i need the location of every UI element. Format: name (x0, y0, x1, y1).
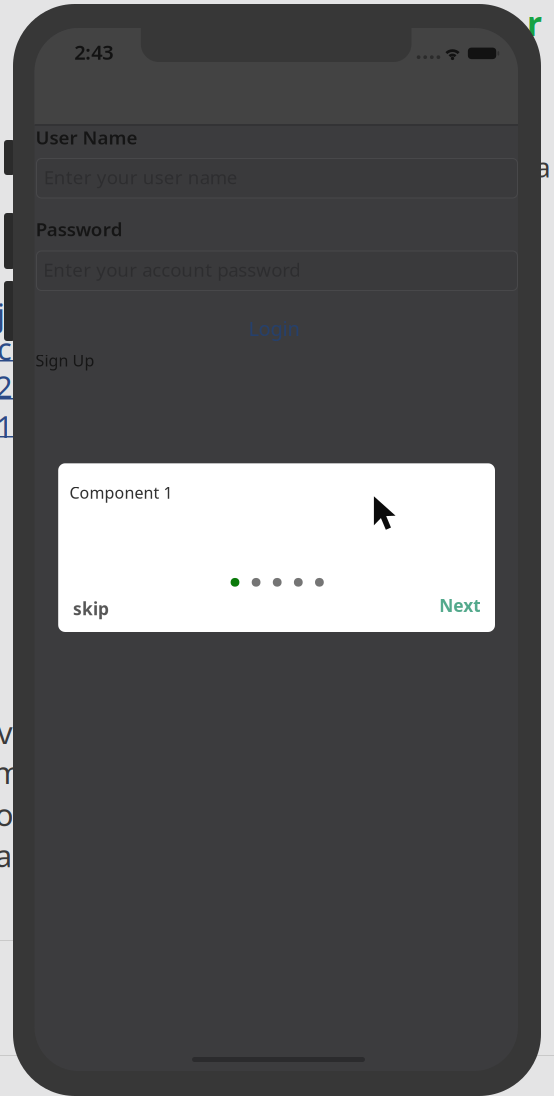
staticText: 1 (0, 406, 14, 447)
staticText: Enter your user name (44, 165, 238, 189)
staticText: a r (498, 1, 542, 45)
staticText: m (0, 752, 22, 793)
staticText: Login (248, 315, 299, 341)
staticText: v (0, 712, 13, 753)
staticText: Enter your account password (43, 257, 300, 282)
staticText: sa (522, 148, 551, 185)
staticText: j (0, 294, 5, 335)
button[interactable]: skip (73, 596, 125, 622)
button[interactable]: Sign Up (36, 348, 106, 372)
staticText: Password (36, 216, 123, 241)
staticText: c (0, 328, 12, 369)
staticText: User Name (36, 125, 138, 150)
staticText: Sign Up (36, 350, 95, 371)
staticText: Next (439, 594, 481, 617)
staticText: skip (73, 597, 109, 620)
staticText: o (0, 794, 14, 835)
staticText: a (0, 835, 12, 876)
staticText: Component 1 (69, 482, 172, 503)
staticText: 2:43 (74, 39, 113, 65)
button[interactable]: Login (248, 314, 306, 342)
button[interactable]: Next (439, 592, 491, 618)
staticText: 2e (0, 366, 30, 407)
